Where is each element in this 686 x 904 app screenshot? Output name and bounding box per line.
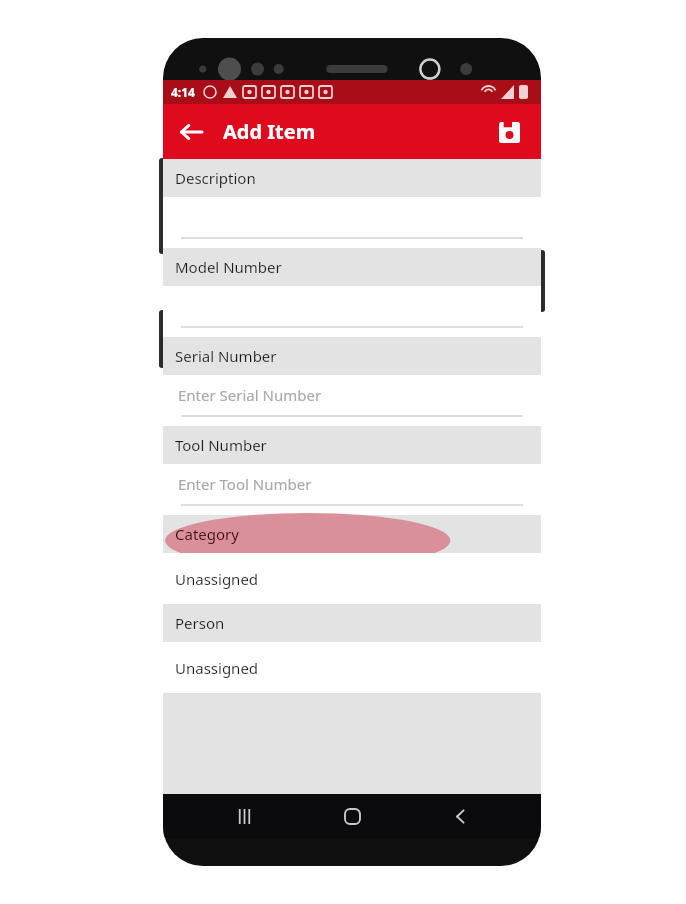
staticText: Add Item <box>223 118 316 145</box>
staticText: Unassigned <box>175 658 259 678</box>
staticText: Person <box>175 613 225 633</box>
button[interactable]: Enter Tool Number <box>163 464 541 515</box>
button[interactable]: Category <box>163 515 541 553</box>
staticText: Serial Number <box>175 346 277 366</box>
button[interactable]: Description <box>163 159 541 197</box>
button[interactable] <box>163 197 541 248</box>
staticText: Description <box>175 168 256 188</box>
button[interactable]: Enter Serial Number <box>163 375 541 426</box>
staticText: Tool Number <box>175 435 267 455</box>
staticText: Category <box>175 524 239 544</box>
button[interactable]: Person <box>163 604 541 642</box>
button[interactable]: Home <box>325 794 379 838</box>
staticText: Unassigned <box>175 569 259 589</box>
staticText: Model Number <box>175 257 282 277</box>
button[interactable]: Save <box>487 110 531 154</box>
button[interactable]: Serial Number <box>163 337 541 375</box>
button[interactable] <box>163 286 541 337</box>
staticText: Enter Serial Number <box>178 385 322 405</box>
staticText: Enter Tool Number <box>178 474 312 494</box>
button[interactable]: Back <box>169 110 213 154</box>
button[interactable]: Unassigned <box>163 642 541 693</box>
button[interactable]: Back <box>433 794 487 838</box>
button[interactable]: Model Number <box>163 248 541 286</box>
button[interactable]: Unassigned <box>163 553 541 604</box>
button[interactable]: Tool Number <box>163 426 541 464</box>
staticText: 4:14 <box>171 84 195 100</box>
button[interactable]: Recents <box>217 794 271 838</box>
